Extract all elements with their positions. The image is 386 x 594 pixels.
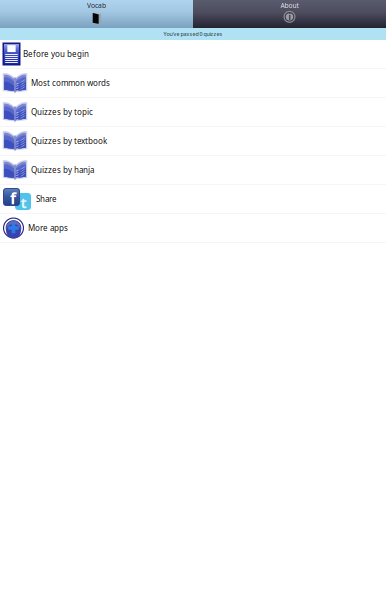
button[interactable]: Quizzes by textbook: [0, 127, 386, 156]
staticText: Before you begin: [23, 49, 89, 59]
button[interactable]: Most common words: [0, 69, 386, 98]
staticText: Quizzes by hanja: [31, 165, 94, 175]
button[interactable]: Before you begin: [0, 40, 386, 69]
staticText: t: [20, 193, 26, 212]
button[interactable]: t: [0, 185, 386, 214]
staticText: f: [10, 187, 16, 209]
staticText: Quizzes by textbook: [31, 136, 107, 146]
button[interactable]: More apps: [0, 214, 386, 243]
button[interactable]: About: [193, 0, 386, 28]
staticText: You've passed 0 quizzes: [163, 30, 222, 38]
staticText: Quizzes by topic: [31, 107, 93, 117]
button[interactable]: Quizzes by topic: [0, 98, 386, 127]
button[interactable]: Vocab: [0, 0, 193, 28]
staticText: Share: [36, 194, 57, 204]
staticText: Vocab: [87, 1, 106, 10]
button[interactable]: Quizzes by hanja: [0, 156, 386, 185]
staticText: More apps: [28, 223, 68, 233]
staticText: About: [280, 1, 298, 10]
staticText: Most common words: [31, 78, 110, 88]
staticText: i: [288, 11, 290, 22]
